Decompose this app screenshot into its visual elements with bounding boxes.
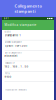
- button[interactable]: Porta: [2, 72, 54, 82]
- button[interactable]: Modello stampante: [2, 40, 54, 51]
- staticText: Modifica stampante: [4, 23, 36, 27]
- staticText: Collegamento stampanti: [14, 3, 41, 14]
- staticText: Indirizzo IP: [4, 62, 14, 64]
- staticText: Nome: [4, 31, 10, 33]
- staticText: 9100: [4, 75, 11, 78]
- staticText: Modello stampante: [4, 41, 21, 44]
- staticText: Epson TM-T20II: [4, 44, 27, 47]
- staticText: Impostazioni avanzate: [4, 88, 26, 91]
- button[interactable]: Indirizzo IP: [2, 61, 54, 72]
- button[interactable]: Modifica stampante: [2, 20, 54, 30]
- staticText: Ethernet: [4, 54, 17, 58]
- button[interactable]: Nome: [2, 30, 54, 40]
- button[interactable]: Tipo di collegamento: [2, 51, 54, 61]
- staticText: Stampante 1: [4, 34, 20, 37]
- staticText: Porta: [4, 72, 9, 75]
- button[interactable]: Impostazioni avanzate: [2, 82, 54, 91]
- staticText: 9:41: [3, 17, 8, 20]
- staticText: Tipo di collegamento: [4, 52, 21, 54]
- staticText: 192 . 168 . 1 . 50: [4, 65, 28, 68]
